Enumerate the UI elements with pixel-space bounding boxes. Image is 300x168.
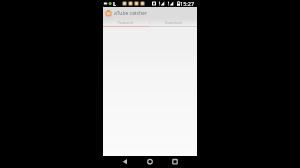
- button[interactable]: Recents: [165, 156, 196, 168]
- staticText: Featured: [118, 20, 134, 25]
- button[interactable]: Back: [103, 156, 134, 168]
- staticText: Download: [165, 20, 183, 25]
- button[interactable]: Featured: [103, 19, 149, 26]
- staticText: 15:27: [180, 0, 195, 7]
- button[interactable]: Download: [150, 19, 197, 26]
- button[interactable]: Home: [134, 156, 165, 168]
- staticText: aTube catcher: [114, 10, 148, 17]
- staticText: L: [113, 0, 117, 7]
